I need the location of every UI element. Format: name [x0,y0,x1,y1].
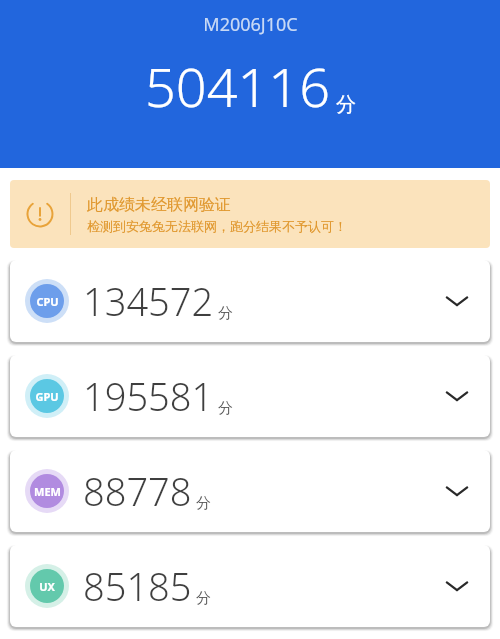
staticText: 134572 [83,275,214,327]
other: Warning [26,200,54,228]
staticText: 195581 [83,370,214,422]
button[interactable]: MEM [10,450,490,532]
staticText: 检测到安兔兔无法联网，跑分结果不予认可！ [87,218,347,234]
staticText: 85185 [83,560,192,612]
staticText: CPU [36,294,59,309]
staticText: 分 [336,92,356,117]
staticText: GPU [35,389,59,404]
staticText: M2006J10C [203,12,298,37]
staticText: 分 [218,304,233,323]
button[interactable]: Warning [10,180,490,248]
staticText: 分 [196,589,211,608]
staticText: 此成绩未经联网验证 [87,195,231,215]
button[interactable]: Expand MEM details [430,464,484,518]
button[interactable]: GPU [10,355,490,437]
button[interactable]: UX [10,545,490,627]
staticText: MEM [34,484,61,499]
button[interactable]: Expand CPU details [430,274,484,328]
staticText: 88778 [83,465,192,517]
button[interactable]: CPU [10,260,490,342]
button[interactable]: Expand UX details [430,559,484,613]
staticText: 分 [218,399,233,418]
staticText: 504116 [145,49,331,123]
staticText: 分 [196,494,211,513]
button[interactable]: Expand GPU details [430,369,484,423]
staticText: UX [39,579,55,594]
